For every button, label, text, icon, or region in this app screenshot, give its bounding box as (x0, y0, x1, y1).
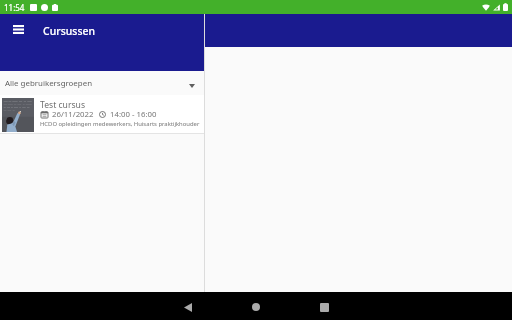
button[interactable]: Alle gebruikersgroepen (0, 71, 204, 95)
staticText: 11:54 (4, 2, 25, 13)
button[interactable]: Home (232, 293, 280, 320)
staticText: Cursussen (43, 24, 96, 38)
button[interactable]: Recent apps (300, 293, 348, 320)
staticText: Test cursus (40, 99, 86, 111)
staticText: HCDO opleidingen medewerkers, Huisarts p… (40, 120, 200, 128)
button[interactable]: Open navigation menu (0, 14, 36, 47)
staticText: 26/11/2022 (52, 109, 94, 120)
staticText: Alle gebruikersgroepen (5, 78, 93, 89)
button[interactable]: Test cursus (0, 95, 204, 134)
staticText: 14:00 - 16:00 (110, 109, 157, 120)
button[interactable]: Back (164, 293, 212, 320)
